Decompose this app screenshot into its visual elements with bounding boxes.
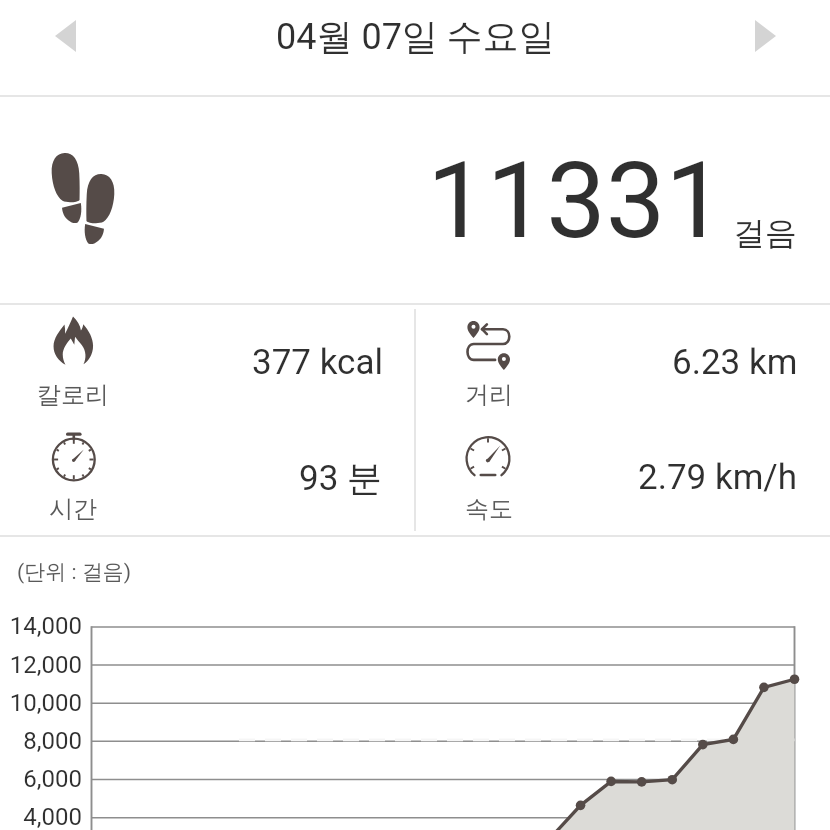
staticText: 6.23 km xyxy=(672,342,798,383)
button[interactable]: Previous day xyxy=(41,6,89,65)
staticText: 8,000 xyxy=(0,727,82,755)
staticText: 377 kcal xyxy=(252,342,383,383)
button[interactable]: 거리 xyxy=(415,305,830,420)
staticText: 6,000 xyxy=(0,765,82,793)
staticText: 14,000 xyxy=(0,612,82,640)
staticText: 10,000 xyxy=(0,689,82,717)
staticText: 11331 xyxy=(427,139,725,263)
staticText: 12,000 xyxy=(0,651,82,679)
staticText: 04월 07일 수요일 xyxy=(276,14,555,59)
staticText: 거리 xyxy=(429,380,549,410)
button[interactable]: 11331 xyxy=(0,97,830,303)
button[interactable]: 속도 xyxy=(415,420,830,535)
button[interactable]: 시간 xyxy=(0,420,415,535)
staticText: 칼로리 xyxy=(13,380,133,410)
staticText: 시간 xyxy=(13,494,133,524)
button[interactable]: Next day xyxy=(741,6,789,65)
staticText: 93 분 xyxy=(299,456,383,500)
staticText: 속도 xyxy=(429,494,549,524)
staticText: (단위 : 걸음) xyxy=(17,559,132,585)
staticText: 걸음 xyxy=(733,213,797,253)
staticText: 2.79 km/h xyxy=(638,457,798,498)
button[interactable]: 칼로리 xyxy=(0,305,415,420)
staticText: 4,000 xyxy=(0,803,82,830)
